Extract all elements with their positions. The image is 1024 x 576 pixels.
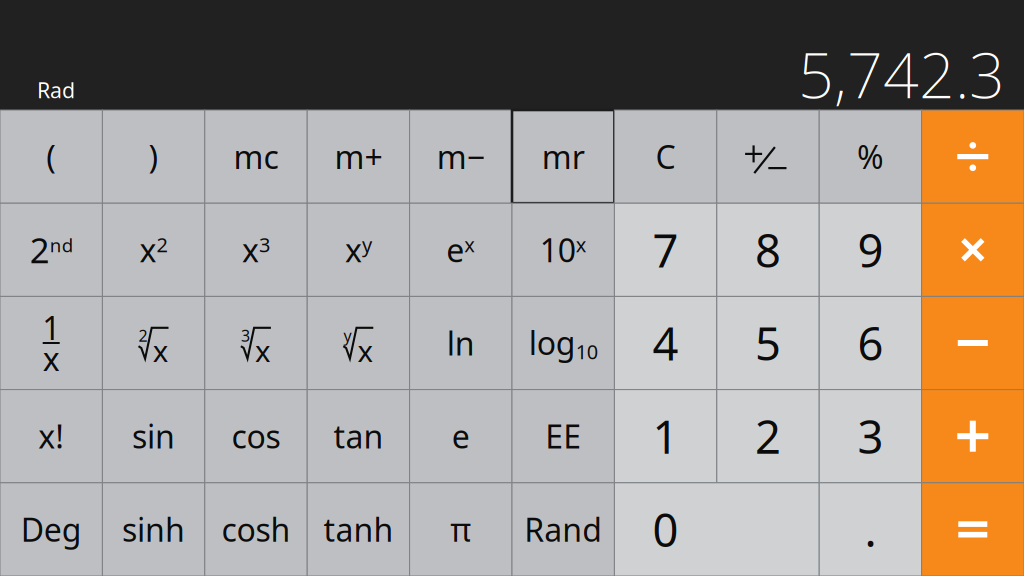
button[interactable]: x3 [205, 203, 307, 296]
button[interactable]: 3 [819, 390, 922, 483]
staticText: . [864, 499, 876, 559]
button[interactable]: m− [410, 110, 512, 203]
button[interactable] [922, 203, 1024, 296]
button[interactable]: 7 [614, 203, 717, 296]
staticText: 5,742.3 [798, 32, 1005, 116]
button[interactable]: cos [205, 390, 307, 483]
staticText: 3 [857, 406, 883, 466]
button[interactable]: 1 [0, 296, 102, 390]
staticText: Rad [37, 76, 75, 104]
staticText: x [153, 331, 169, 370]
button[interactable]: 2nd [0, 203, 102, 296]
staticText: cos [231, 415, 280, 457]
button[interactable]: Rand [512, 483, 614, 576]
staticText: ( [46, 135, 56, 178]
button[interactable]: Rad [37, 80, 157, 100]
button[interactable]: tanh [307, 483, 410, 576]
staticText: tanh [323, 508, 393, 551]
staticText: ex [446, 229, 475, 271]
button[interactable]: 4 [614, 296, 717, 390]
staticText: 0 [653, 499, 679, 559]
button[interactable]: 0 [614, 483, 819, 576]
staticText: ) [149, 135, 159, 178]
button[interactable]: cosh [205, 483, 307, 576]
staticText: 1 [42, 306, 60, 349]
staticText: x! [38, 415, 64, 457]
staticText: x [357, 331, 373, 370]
staticText: xy [345, 229, 372, 271]
staticText: m− [437, 135, 485, 178]
button[interactable]: % [819, 110, 922, 203]
button[interactable]: m+ [307, 110, 410, 203]
staticText: 1 [653, 406, 679, 466]
button[interactable]: . [819, 483, 922, 576]
button[interactable]: ln [410, 296, 512, 390]
staticText: mr [542, 135, 585, 178]
staticText: ln [447, 322, 475, 364]
button[interactable]: e [410, 390, 512, 483]
button[interactable]: 2 [102, 296, 205, 390]
button[interactable]: ) [102, 110, 205, 203]
staticText: x2 [140, 229, 168, 271]
staticText: π [450, 508, 471, 551]
button[interactable]: ( [0, 110, 102, 203]
button[interactable]: 8 [717, 203, 819, 296]
button[interactable]: C [614, 110, 717, 203]
staticText: EE [545, 415, 581, 457]
staticText: m+ [334, 135, 382, 178]
staticText: 9 [857, 220, 883, 280]
button[interactable]: log10 [512, 296, 614, 390]
button[interactable]: mr [512, 110, 614, 203]
staticText: mc [233, 135, 278, 178]
button[interactable]: xy [307, 203, 410, 296]
staticText: sinh [122, 508, 185, 551]
button[interactable]: 6 [819, 296, 922, 390]
button[interactable]: sinh [102, 483, 205, 576]
button[interactable]: mc [205, 110, 307, 203]
staticText: 5 [755, 313, 781, 373]
staticText: Deg [21, 508, 82, 551]
button[interactable]: x! [0, 390, 102, 483]
button[interactable]: 5 [717, 296, 819, 390]
staticText: 8 [755, 220, 781, 280]
button[interactable]: 3 [205, 296, 307, 390]
staticText: 7 [653, 220, 679, 280]
staticText: 4 [653, 313, 679, 373]
button[interactable]: ex [410, 203, 512, 296]
button[interactable]: sin [102, 390, 205, 483]
staticText: 2 [139, 325, 148, 346]
staticText: x3 [242, 229, 270, 271]
staticText: sin [132, 415, 175, 457]
button[interactable]: 10x [512, 203, 614, 296]
staticText: 2nd [30, 227, 73, 273]
staticText: log10 [529, 321, 598, 365]
button[interactable] [717, 110, 819, 203]
button[interactable] [922, 483, 1024, 576]
staticText: 2 [755, 406, 781, 466]
button[interactable] [922, 390, 1024, 483]
button[interactable]: π [410, 483, 512, 576]
staticText: y [343, 325, 351, 346]
button[interactable]: EE [512, 390, 614, 483]
staticText: % [857, 135, 884, 178]
staticText: 10x [540, 229, 587, 271]
staticText: x [43, 337, 60, 380]
button[interactable]: y [307, 296, 410, 390]
button[interactable]: Deg [0, 483, 102, 576]
staticText: Rand [524, 508, 602, 551]
staticText: C [656, 135, 676, 178]
staticText: 3 [241, 325, 250, 346]
staticText: e [452, 415, 470, 457]
staticText: 6 [857, 313, 883, 373]
button[interactable]: x2 [102, 203, 205, 296]
staticText: tan [333, 415, 383, 457]
button[interactable]: 9 [819, 203, 922, 296]
button[interactable] [922, 296, 1024, 390]
staticText: x [255, 331, 271, 370]
button[interactable] [922, 110, 1024, 203]
staticText: cosh [221, 508, 290, 551]
button[interactable]: 1 [614, 390, 717, 483]
button[interactable]: tan [307, 390, 410, 483]
button[interactable]: 2 [717, 390, 819, 483]
